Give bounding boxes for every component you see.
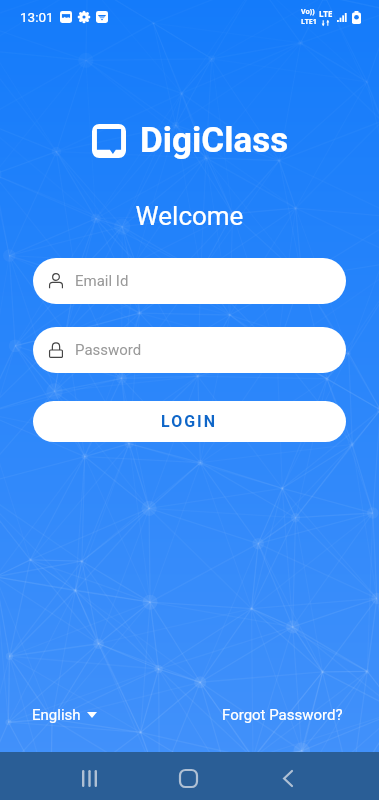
staticText: DigiClass	[140, 120, 289, 161]
staticText: LTE1	[301, 17, 317, 27]
button[interactable]: Home	[158, 752, 218, 800]
button[interactable]: Recent apps	[59, 752, 119, 800]
button[interactable]: Email Id	[33, 258, 346, 304]
staticText: Welcome	[0, 201, 379, 231]
button[interactable]: Forgot Password?	[222, 706, 343, 724]
button[interactable]: English	[32, 706, 97, 724]
button[interactable]: Back	[257, 752, 317, 800]
staticText: LTE	[319, 8, 333, 19]
staticText: Password	[75, 341, 142, 359]
staticText: LOGIN	[161, 412, 218, 431]
button[interactable]: LOGIN	[33, 401, 346, 442]
staticText: Email Id	[75, 272, 129, 290]
staticText: 13:01	[20, 9, 54, 25]
staticText: Vo))	[301, 7, 315, 17]
staticText: English	[32, 706, 81, 724]
button[interactable]: Password	[33, 327, 346, 373]
